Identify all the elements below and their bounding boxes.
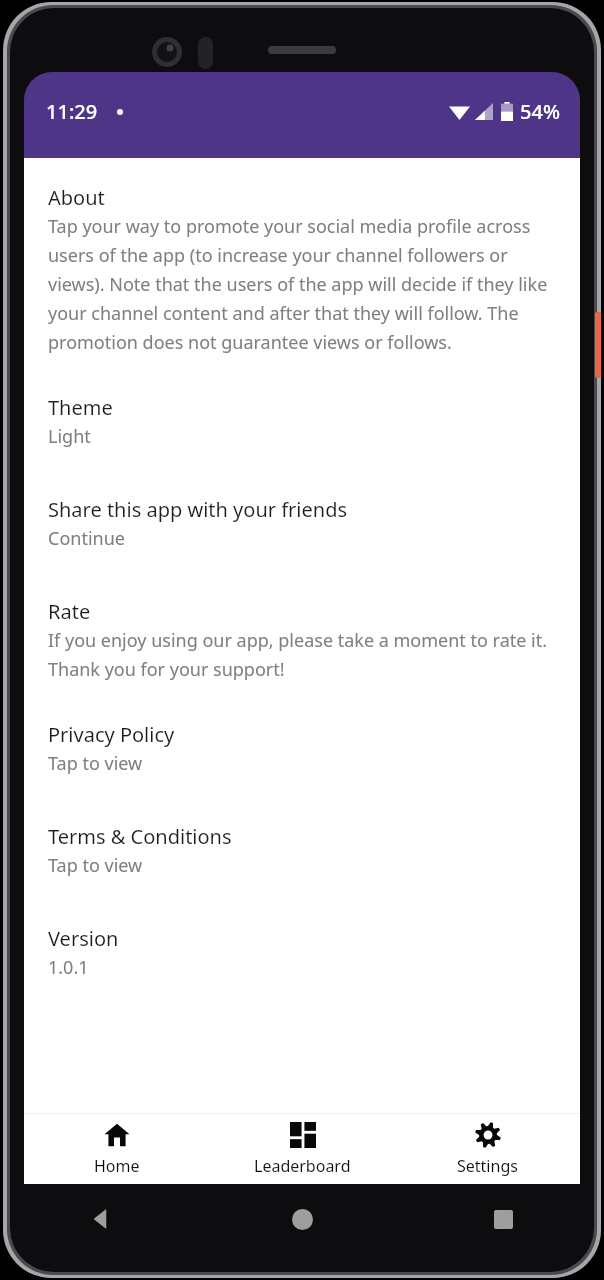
staticText: Settings <box>457 1155 518 1177</box>
button[interactable]: Version <box>24 925 580 980</box>
staticText: 54% <box>520 98 560 125</box>
button[interactable]: About <box>24 184 580 354</box>
staticText: 1.0.1 <box>48 955 89 980</box>
button[interactable]: Settings <box>395 1114 580 1184</box>
button[interactable]: Share this app with your friends <box>24 496 580 551</box>
staticText: About <box>48 184 105 211</box>
staticText: Tap your way to promote your social medi… <box>48 214 556 354</box>
staticText: Light <box>48 424 91 449</box>
staticText: Theme <box>48 394 113 421</box>
button[interactable]: Home <box>24 1114 210 1184</box>
other: Home <box>292 1209 313 1230</box>
staticText: If you enjoy using our app, please take … <box>48 628 556 681</box>
other: Back <box>90 1208 112 1230</box>
staticText: Share this app with your friends <box>48 496 348 523</box>
staticText: Leaderboard <box>254 1155 351 1177</box>
staticText: Version <box>48 925 119 952</box>
staticText: 11:29 <box>46 98 98 125</box>
staticText: Continue <box>48 526 125 551</box>
staticText: Home <box>94 1155 140 1177</box>
button[interactable]: Terms & Conditions <box>24 823 580 878</box>
staticText: Privacy Policy <box>48 721 175 748</box>
other: Recent apps <box>494 1210 513 1229</box>
button[interactable]: Theme <box>24 394 580 449</box>
staticText: Tap to view <box>48 853 143 878</box>
staticText: Tap to view <box>48 751 143 776</box>
staticText: Terms & Conditions <box>48 823 232 850</box>
button[interactable]: Privacy Policy <box>24 721 580 776</box>
button[interactable]: Rate <box>24 598 580 681</box>
button[interactable]: Leaderboard <box>210 1114 395 1184</box>
staticText: Rate <box>48 598 91 625</box>
